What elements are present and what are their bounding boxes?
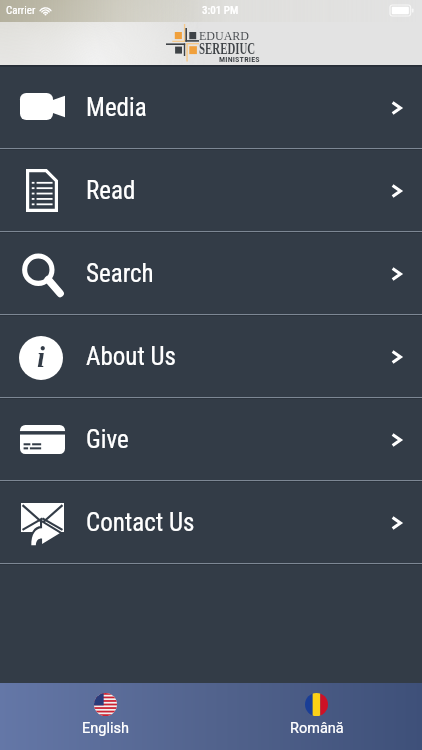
button[interactable]: Read: [0, 150, 422, 233]
staticText: i: [37, 341, 46, 373]
staticText: MINISTRIES: [219, 55, 260, 64]
button[interactable]: Give: [0, 399, 422, 482]
button[interactable]: Contact Us: [0, 482, 422, 565]
staticText: Română: [290, 720, 344, 737]
staticText: Read: [86, 176, 136, 205]
staticText: 3:01 PM: [202, 4, 239, 17]
staticText: Contact Us: [86, 508, 195, 537]
staticText: SEREDIUC: [199, 40, 255, 58]
button[interactable]: Search: [0, 233, 422, 316]
staticText: Search: [86, 259, 154, 288]
button[interactable]: Media: [0, 67, 422, 150]
button[interactable]: English: [0, 683, 211, 750]
button[interactable]: Română: [211, 683, 422, 750]
staticText: English: [82, 720, 129, 737]
staticText: Carrier: [6, 4, 36, 17]
button[interactable]: i: [0, 316, 422, 399]
staticText: EDUARD: [199, 29, 249, 42]
staticText: Give: [86, 425, 129, 454]
staticText: Media: [86, 93, 147, 122]
staticText: About Us: [86, 342, 176, 371]
